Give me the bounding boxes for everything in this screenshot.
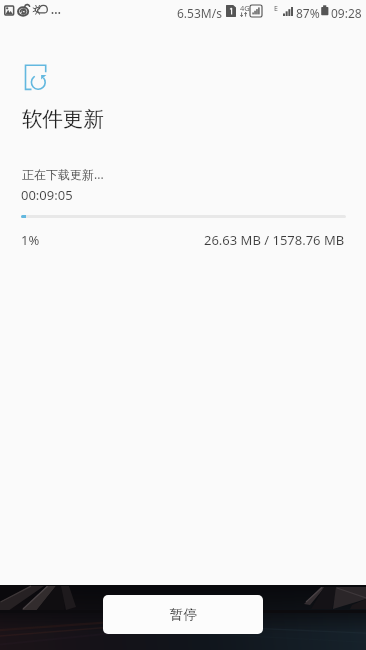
button[interactable]: 暂停 [103, 595, 263, 634]
staticText: 4G [240, 3, 250, 13]
staticText: 6.53M/s [177, 5, 222, 21]
staticText: 暂停 [170, 606, 197, 623]
staticText: 00:09:05 [21, 186, 73, 204]
staticText: 正在下载更新... [22, 166, 104, 182]
staticText: 1% [21, 231, 40, 249]
staticText: 09:28 [331, 5, 362, 21]
staticText: 26.63 MB / 1578.76 MB [204, 231, 345, 249]
staticText: E [274, 4, 278, 14]
staticText: 软件更新 [22, 106, 104, 132]
staticText: 87% [296, 5, 320, 21]
